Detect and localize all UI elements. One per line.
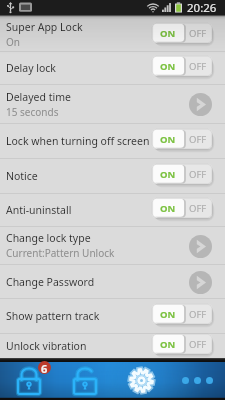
staticText: ON bbox=[160, 133, 176, 146]
staticText: ON bbox=[160, 202, 176, 215]
button[interactable]: Open bbox=[188, 234, 212, 258]
staticText: Delay lock bbox=[6, 61, 56, 75]
staticText: ON bbox=[160, 338, 176, 351]
staticText: Lock when turning off screen bbox=[6, 134, 150, 148]
button[interactable]: Toggle on bbox=[152, 304, 212, 324]
button[interactable]: Unlocked apps bbox=[57, 358, 113, 400]
button[interactable]: Change Password bbox=[0, 265, 225, 298]
button[interactable]: Toggle on bbox=[152, 198, 212, 218]
button[interactable]: Toggle on bbox=[152, 164, 212, 184]
button[interactable]: Toggle on bbox=[152, 23, 212, 43]
staticText: Notice bbox=[6, 169, 38, 183]
staticText: ON bbox=[160, 60, 176, 73]
staticText: 20:26 bbox=[187, 0, 217, 15]
button[interactable]: Toggle on bbox=[152, 334, 212, 354]
button[interactable]: Delayed time bbox=[0, 85, 225, 123]
staticText: Super App Lock bbox=[6, 20, 83, 34]
button[interactable]: Change lock type bbox=[0, 227, 225, 264]
staticText: On bbox=[6, 35, 20, 49]
button[interactable]: Open bbox=[188, 270, 212, 294]
button[interactable]: Locked apps bbox=[0, 358, 57, 400]
staticText: OFF bbox=[189, 133, 207, 146]
staticText: Anti-uninstall bbox=[6, 203, 72, 217]
staticText: Show pattern track bbox=[6, 309, 100, 323]
staticText: OFF bbox=[189, 60, 207, 73]
button[interactable]: Delay lock bbox=[0, 52, 225, 84]
staticText: Current:Pattern Unlock bbox=[6, 246, 115, 260]
button[interactable]: Lock when turning off screen bbox=[0, 124, 225, 158]
staticText: Delayed time bbox=[6, 90, 71, 104]
button[interactable]: Super App Lock bbox=[0, 18, 225, 51]
staticText: OFF bbox=[189, 168, 207, 181]
button[interactable]: Notice bbox=[0, 159, 225, 193]
staticText: ON bbox=[160, 308, 176, 321]
staticText: Unlock vibration bbox=[6, 339, 87, 353]
button[interactable]: More bbox=[169, 358, 225, 400]
button[interactable]: Unlock vibration bbox=[0, 334, 225, 358]
button[interactable]: Anti-uninstall bbox=[0, 194, 225, 226]
staticText: OFF bbox=[189, 338, 207, 351]
staticText: OFF bbox=[189, 308, 207, 321]
button[interactable]: Toggle on bbox=[152, 56, 212, 76]
staticText: OFF bbox=[189, 27, 207, 40]
button[interactable]: Toggle on bbox=[152, 129, 212, 149]
staticText: OFF bbox=[189, 202, 207, 215]
button[interactable]: Show pattern track bbox=[0, 299, 225, 333]
button[interactable]: Settings bbox=[113, 358, 169, 400]
staticText: 15 seconds bbox=[6, 105, 59, 119]
staticText: ON bbox=[160, 168, 176, 181]
staticText: ON bbox=[160, 27, 176, 40]
button[interactable]: Open bbox=[188, 92, 212, 116]
staticText: Change Password bbox=[6, 275, 95, 289]
staticText: Change lock type bbox=[6, 231, 91, 245]
staticText: 6 bbox=[41, 361, 48, 374]
